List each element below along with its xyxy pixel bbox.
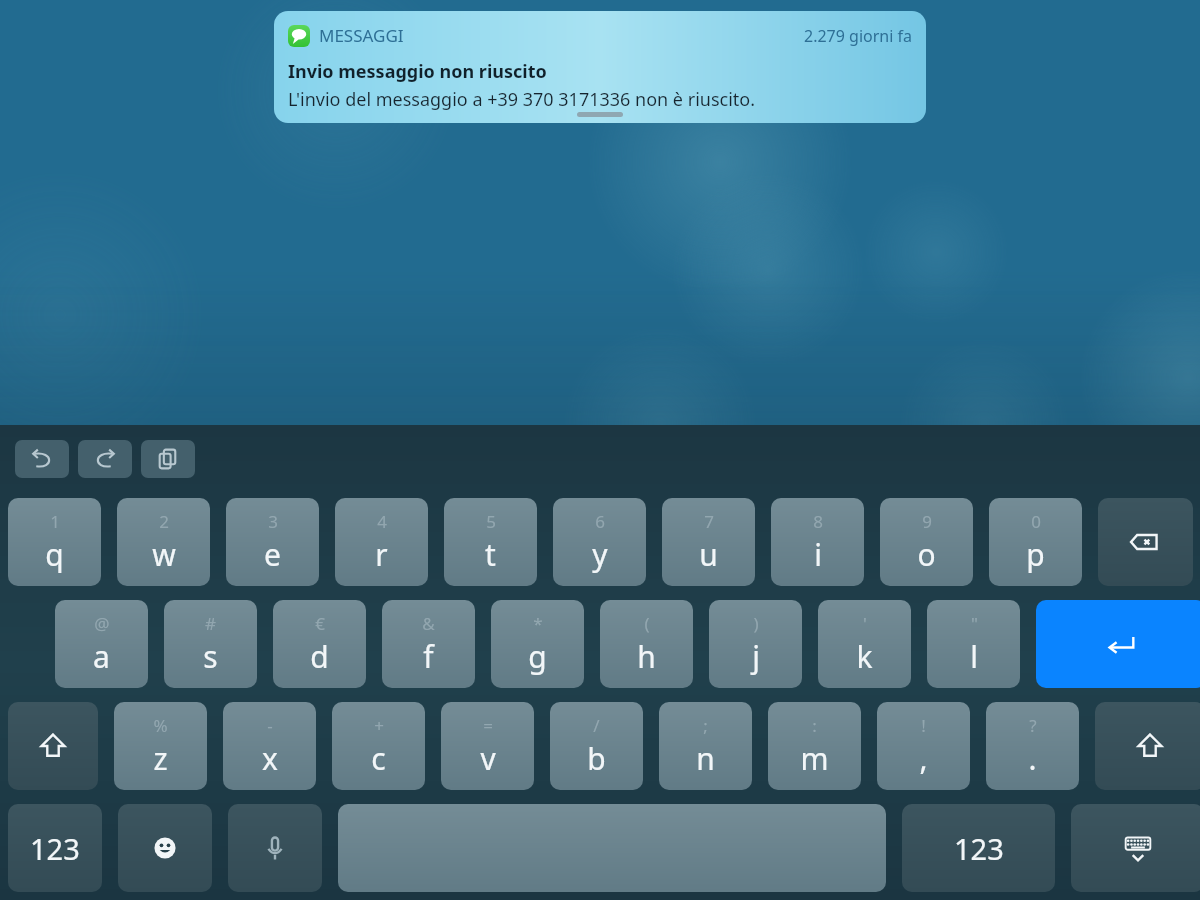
button[interactable]: Backspace (1098, 498, 1193, 586)
staticText: 7 (704, 510, 714, 533)
staticText: q (45, 534, 64, 575)
staticText: 2.279 giorni fa (804, 25, 912, 47)
button[interactable]: 1 (8, 498, 101, 586)
button[interactable]: 8 (771, 498, 864, 586)
button[interactable]: € (273, 600, 366, 688)
staticText: € (315, 612, 325, 635)
button[interactable]: Voice input (228, 804, 322, 892)
staticText: * (533, 612, 543, 635)
button[interactable]: 6 (553, 498, 646, 586)
staticText: " (971, 612, 978, 635)
button[interactable]: * (491, 600, 584, 688)
button[interactable]: @ (55, 600, 148, 688)
button[interactable]: Shift (1095, 702, 1200, 790)
button[interactable]: + (332, 702, 425, 790)
button[interactable]: ! (877, 702, 970, 790)
staticText: c (371, 738, 386, 779)
button[interactable]: : (768, 702, 861, 790)
staticText: % (153, 714, 168, 737)
button[interactable]: = (441, 702, 534, 790)
staticText: v (480, 738, 496, 779)
staticText: b (587, 738, 606, 779)
staticText: L'invio del messaggio a +39 370 3171336 … (288, 87, 756, 112)
button[interactable]: # (164, 600, 257, 688)
button[interactable]: ? (986, 702, 1079, 790)
staticText: w (152, 534, 176, 575)
staticText: t (485, 534, 496, 575)
staticText: f (423, 636, 434, 677)
button[interactable]: 0 (989, 498, 1082, 586)
button[interactable]: ' (818, 600, 911, 688)
staticText: & (422, 612, 435, 635)
staticText: 9 (922, 510, 932, 533)
button[interactable]: & (382, 600, 475, 688)
button[interactable]: " (927, 600, 1020, 688)
staticText: r (375, 534, 388, 575)
button[interactable]: 123 (8, 804, 102, 892)
staticText: g (528, 636, 547, 677)
staticText: MESSAGGI (319, 24, 404, 47)
staticText: l (970, 636, 978, 677)
button[interactable]: Hide keyboard (1071, 804, 1200, 892)
staticText: 8 (813, 510, 823, 533)
staticText: 1 (50, 510, 60, 533)
staticText: 6 (595, 510, 605, 533)
staticText: - (267, 714, 273, 737)
staticText: a (93, 636, 110, 677)
button[interactable]: - (223, 702, 316, 790)
staticText: # (205, 612, 216, 635)
staticText: 123 (30, 829, 80, 868)
staticText: ( (644, 612, 650, 635)
staticText: ; (703, 714, 708, 737)
staticText: : (812, 714, 817, 737)
staticText: m (800, 738, 829, 779)
button[interactable]: 2 (117, 498, 210, 586)
staticText: ? (1029, 714, 1037, 737)
staticText: u (699, 534, 718, 575)
button[interactable]: 9 (880, 498, 973, 586)
button[interactable]: ) (709, 600, 802, 688)
staticText: ' (863, 612, 867, 635)
staticText: / (593, 714, 600, 737)
button[interactable]: / (550, 702, 643, 790)
staticText: p (1026, 534, 1045, 575)
staticText: e (264, 534, 281, 575)
button[interactable]: 123 (902, 804, 1055, 892)
staticText: k (856, 636, 873, 677)
button[interactable]: % (114, 702, 207, 790)
button[interactable]: MESSAGGI (274, 11, 926, 123)
button[interactable]: 3 (226, 498, 319, 586)
button[interactable]: Undo (15, 440, 69, 478)
staticText: s (203, 636, 218, 677)
button[interactable]: Emoji (118, 804, 212, 892)
staticText: n (696, 738, 715, 779)
button[interactable]: 7 (662, 498, 755, 586)
staticText: 4 (377, 510, 387, 533)
staticText: @ (94, 612, 110, 635)
staticText: d (310, 636, 329, 677)
button[interactable]: Clipboard (141, 440, 195, 478)
staticText: = (483, 714, 493, 737)
staticText: ) (753, 612, 759, 635)
button[interactable]: Enter (1036, 600, 1200, 688)
staticText: z (153, 738, 168, 779)
button[interactable]: ; (659, 702, 752, 790)
staticText: j (752, 636, 760, 677)
staticText: h (637, 636, 656, 677)
button[interactable]: 4 (335, 498, 428, 586)
button[interactable]: Redo (78, 440, 132, 478)
staticText: 123 (954, 829, 1004, 868)
button[interactable] (338, 804, 886, 892)
staticText: 2 (159, 510, 169, 533)
button[interactable]: ( (600, 600, 693, 688)
staticText: + (374, 714, 384, 737)
staticText: Invio messaggio non riuscito (288, 59, 547, 84)
staticText: 3 (268, 510, 278, 533)
button[interactable]: 5 (444, 498, 537, 586)
button[interactable]: Shift (8, 702, 98, 790)
staticText: y (592, 534, 608, 575)
staticText: , (919, 738, 928, 779)
staticText: . (1028, 738, 1037, 779)
staticText: o (917, 534, 936, 575)
staticText: 0 (1031, 510, 1041, 533)
